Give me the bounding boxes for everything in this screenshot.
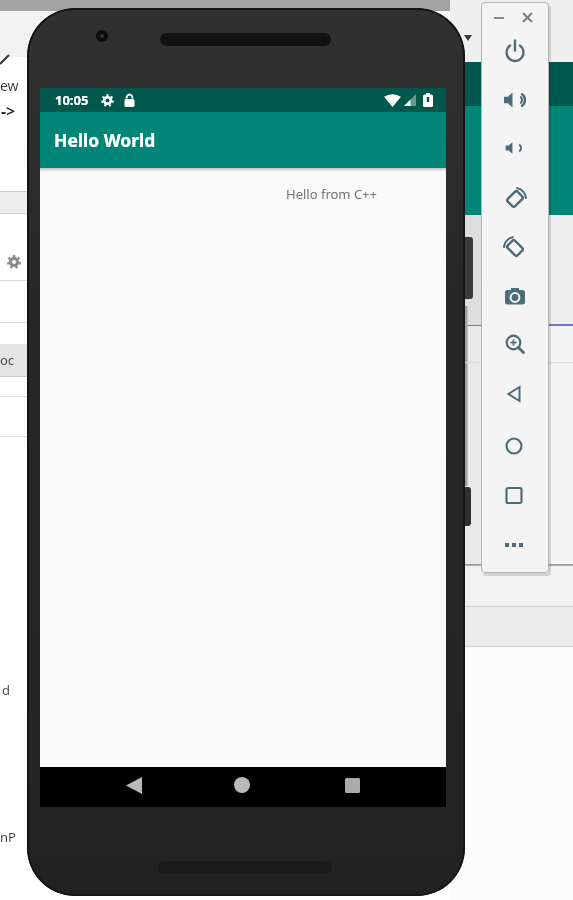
button[interactable] [491, 181, 539, 217]
button[interactable] [126, 777, 142, 794]
staticText: Hello from C++ [286, 185, 377, 203]
button[interactable] [345, 778, 360, 793]
button[interactable] [519, 10, 539, 26]
button[interactable] [491, 130, 539, 166]
staticText: nP [0, 828, 16, 846]
staticText: Hello World [54, 128, 156, 152]
button[interactable] [491, 230, 539, 266]
button[interactable] [491, 326, 539, 362]
button[interactable] [489, 10, 509, 26]
staticText: -> [1, 100, 16, 122]
staticText: oc [0, 351, 15, 369]
button[interactable] [491, 33, 539, 69]
staticText: ew [0, 76, 19, 95]
button[interactable] [491, 82, 539, 118]
button[interactable] [491, 527, 539, 563]
staticText: d [2, 681, 10, 699]
button[interactable] [491, 428, 539, 464]
staticText: 10:05 [55, 91, 89, 109]
button[interactable] [234, 777, 250, 793]
button[interactable] [491, 478, 539, 514]
button[interactable] [491, 376, 539, 412]
button[interactable] [491, 279, 539, 315]
